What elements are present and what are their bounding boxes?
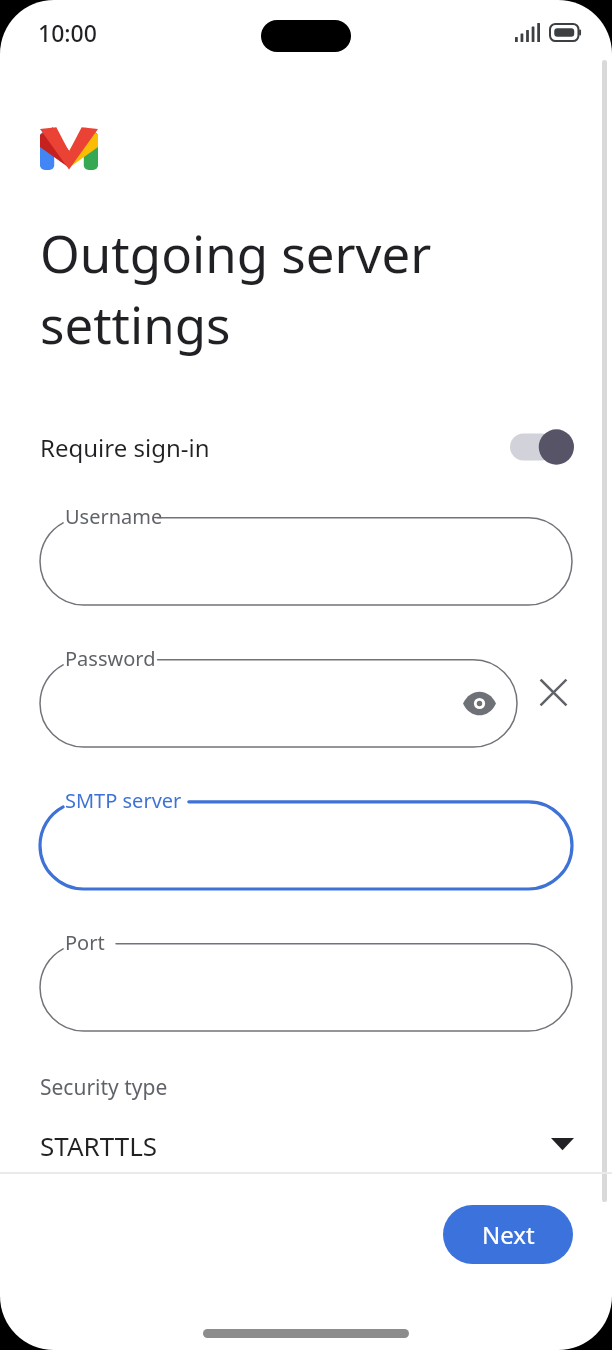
button[interactable]: Clear password: [528, 667, 578, 717]
staticText: Require sign-in: [40, 431, 210, 464]
button[interactable]: Require sign-in toggle: [510, 426, 574, 468]
staticText: 10:00: [38, 17, 97, 48]
button[interactable]: Require sign-in: [40, 416, 574, 478]
button[interactable]: Password: [40, 645, 517, 747]
button[interactable]: Port: [40, 929, 572, 1031]
staticText: Password: [65, 645, 156, 672]
staticText: STARTTLS: [40, 1128, 158, 1163]
staticText: Port: [65, 929, 105, 956]
button[interactable]: Next: [443, 1205, 573, 1264]
button[interactable]: SMTP server: [40, 787, 572, 889]
staticText: Next: [482, 1218, 535, 1251]
staticText: SMTP server: [65, 787, 182, 814]
staticText: Username: [65, 503, 163, 530]
button[interactable]: Show password: [455, 679, 503, 727]
button[interactable]: Username: [40, 503, 572, 605]
staticText: Outgoing server settings: [40, 218, 432, 359]
button[interactable]: STARTTLS: [40, 1122, 574, 1168]
staticText: Security type: [40, 1073, 168, 1102]
